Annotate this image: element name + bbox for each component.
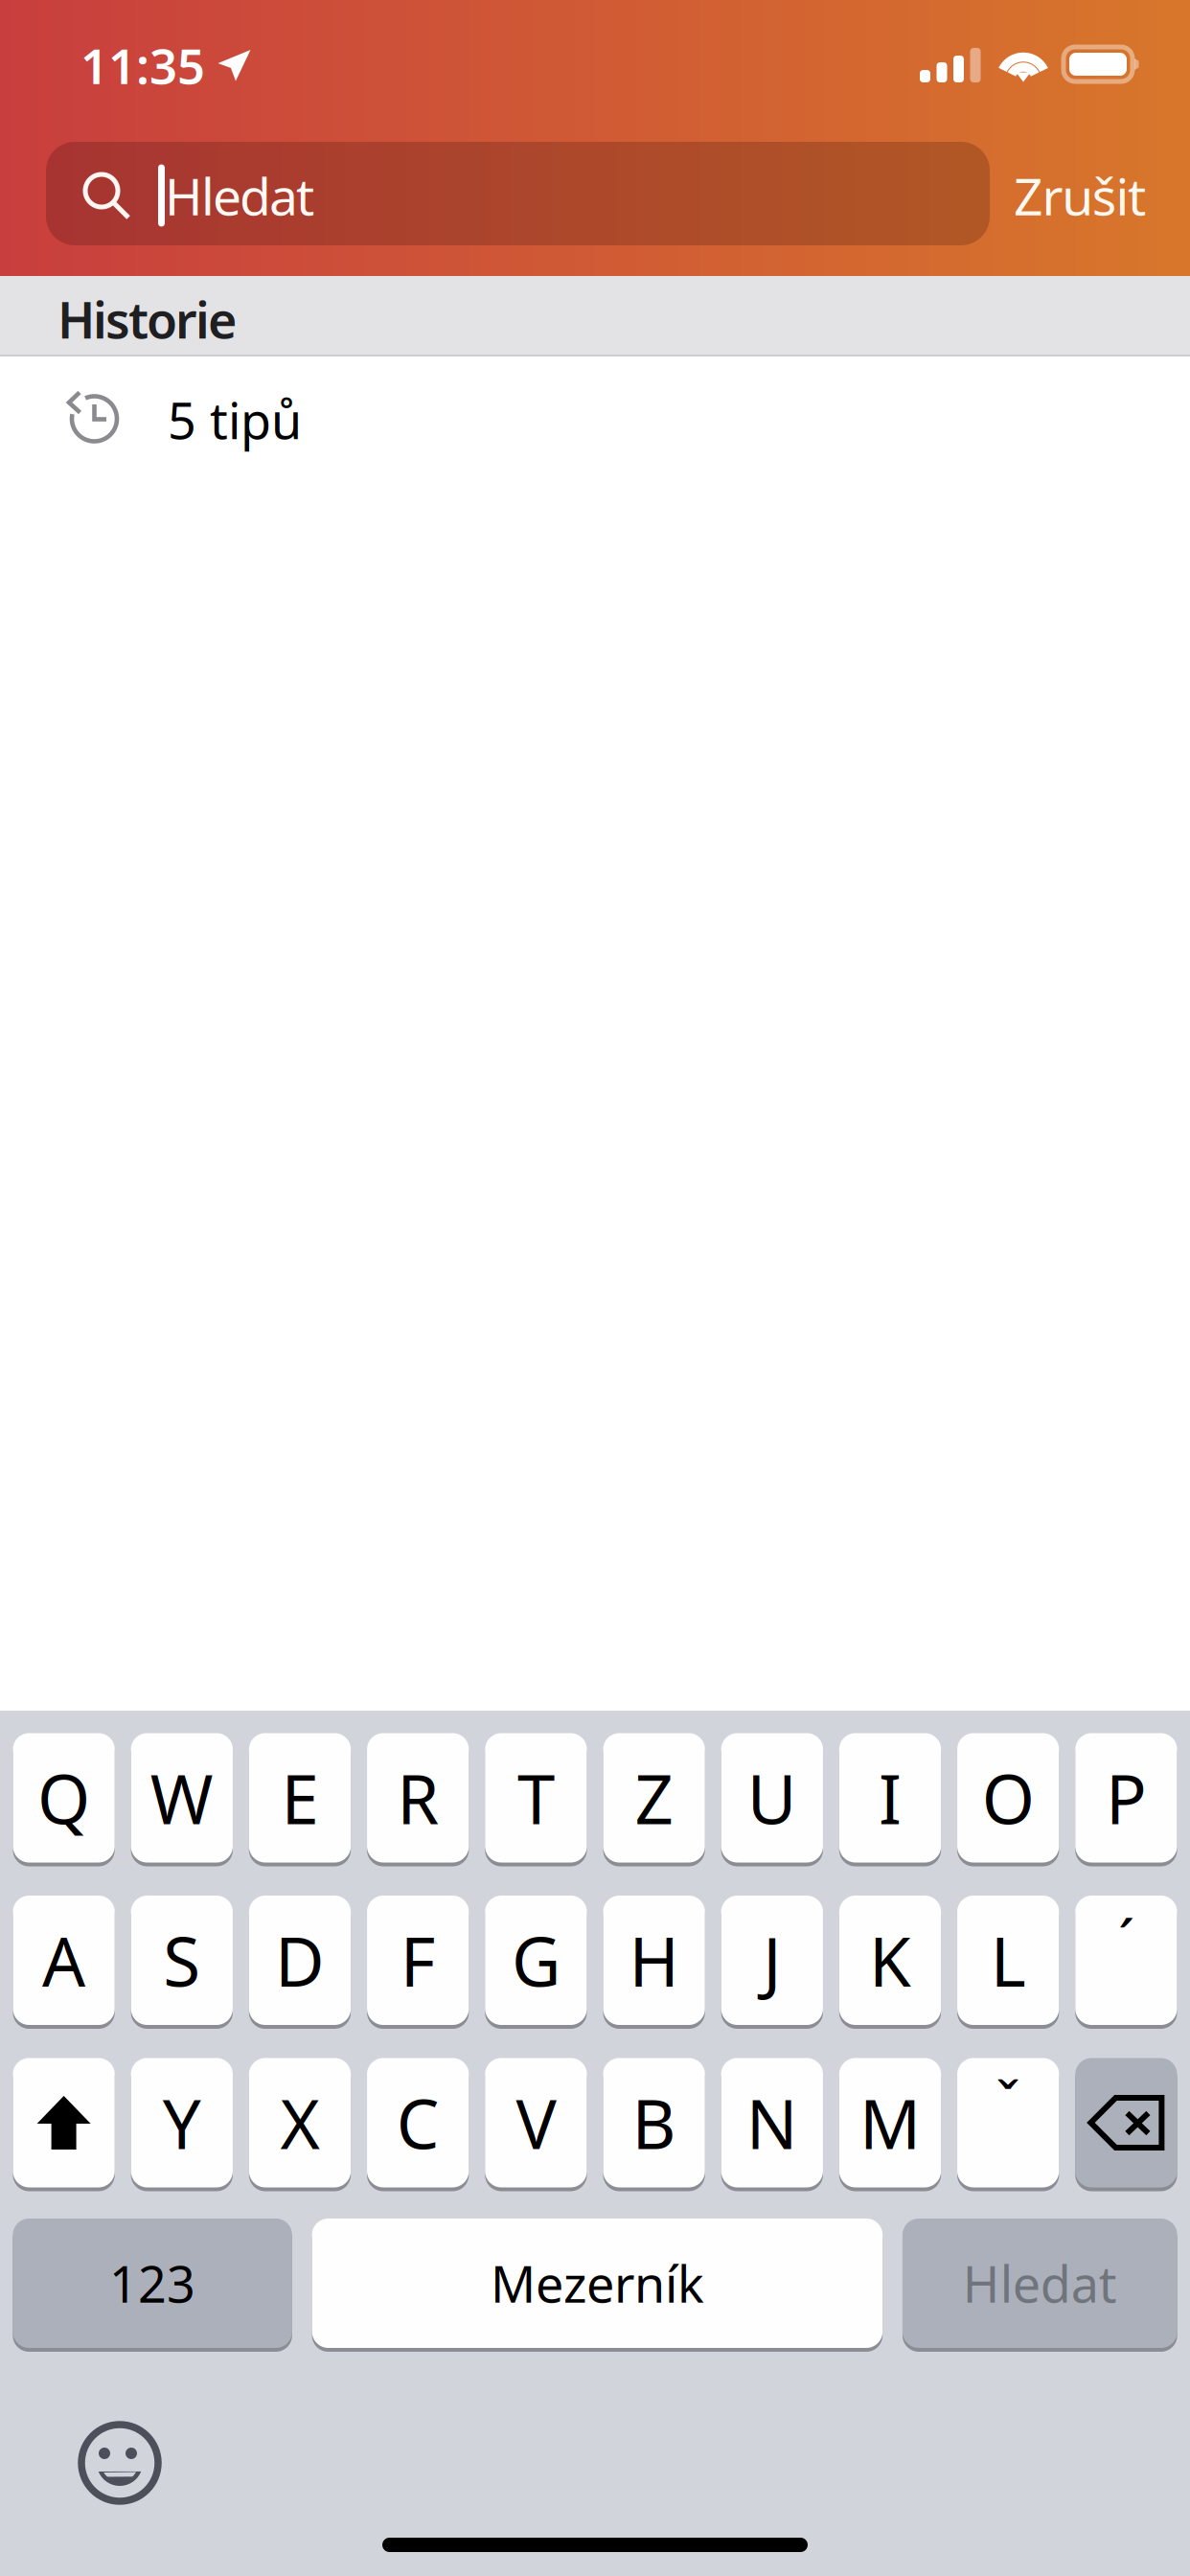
button[interactable]: H [603,1896,705,2029]
staticText: O [982,1753,1034,1843]
button[interactable]: ˇ [957,2058,1059,2191]
staticText: 123 [109,2250,196,2316]
staticText: D [275,1915,325,2005]
button[interactable]: Shift [13,2058,115,2191]
button[interactable]: ´ [1075,1896,1177,2029]
button[interactable]: C [367,2058,469,2191]
button[interactable]: Y [131,2058,233,2191]
staticText: Historie [57,286,237,352]
staticText: B [632,2078,676,2168]
button[interactable]: Z [603,1733,705,1866]
button[interactable]: D [249,1896,351,2029]
button[interactable]: U [721,1733,823,1866]
staticText: Hledat [963,2250,1117,2316]
button[interactable]: W [131,1733,233,1866]
staticText: V [516,2078,556,2168]
staticText: Y [163,2078,201,2168]
button[interactable]: P [1075,1733,1177,1866]
button[interactable]: 123 [13,2219,292,2352]
button[interactable]: Emoji keyboard [81,2425,158,2501]
staticText: L [990,1915,1026,2005]
staticText: G [512,1915,560,2005]
staticText: N [746,2078,798,2168]
button[interactable]: J [721,1896,823,2029]
staticText: U [747,1753,797,1843]
staticText: E [281,1753,319,1843]
button[interactable]: B [603,2058,705,2191]
button[interactable]: M [839,2058,941,2191]
staticText: Hledat [165,162,314,229]
button[interactable]: K [839,1896,941,2029]
staticText: J [763,1915,781,2005]
button[interactable]: Hledat [46,142,990,245]
button[interactable]: O [957,1733,1059,1866]
button[interactable]: L [957,1896,1059,2029]
button[interactable]: T [485,1733,587,1866]
staticText: Mezerník [490,2250,704,2316]
staticText: 11:35 [80,33,205,97]
staticText: P [1106,1753,1147,1843]
staticText: H [629,1915,679,2005]
button[interactable]: R [367,1733,469,1866]
staticText: ´ [1118,1902,1134,1980]
button[interactable]: I [839,1733,941,1866]
button[interactable]: V [485,2058,587,2191]
button[interactable]: Q [13,1733,115,1866]
staticText: 5 tipů [168,387,302,453]
staticText: C [396,2078,439,2168]
staticText: Q [37,1753,90,1843]
button[interactable]: Hledat [902,2219,1177,2352]
button[interactable]: 5 tipů [0,356,1190,471]
button[interactable]: F [367,1896,469,2029]
staticText: Z [635,1753,673,1843]
button[interactable]: E [249,1733,351,1866]
staticText: S [163,1915,201,2005]
staticText: I [879,1753,902,1843]
button[interactable]: X [249,2058,351,2191]
button[interactable]: Delete [1075,2058,1177,2191]
staticText: ˇ [996,2064,1021,2142]
staticText: M [859,2078,921,2168]
button[interactable]: N [721,2058,823,2191]
staticText: X [280,2078,320,2168]
button[interactable]: S [131,1896,233,2029]
staticText: A [42,1915,85,2005]
staticText: R [397,1753,439,1843]
button[interactable]: A [13,1896,115,2029]
staticText: K [869,1915,911,2005]
staticText: F [400,1915,436,2005]
button[interactable]: G [485,1896,587,2029]
button[interactable]: Mezerník [312,2219,883,2352]
staticText: Zrušit [1014,162,1146,229]
button[interactable]: Zrušit [1007,142,1153,245]
staticText: W [150,1753,213,1843]
staticText: T [517,1753,555,1843]
